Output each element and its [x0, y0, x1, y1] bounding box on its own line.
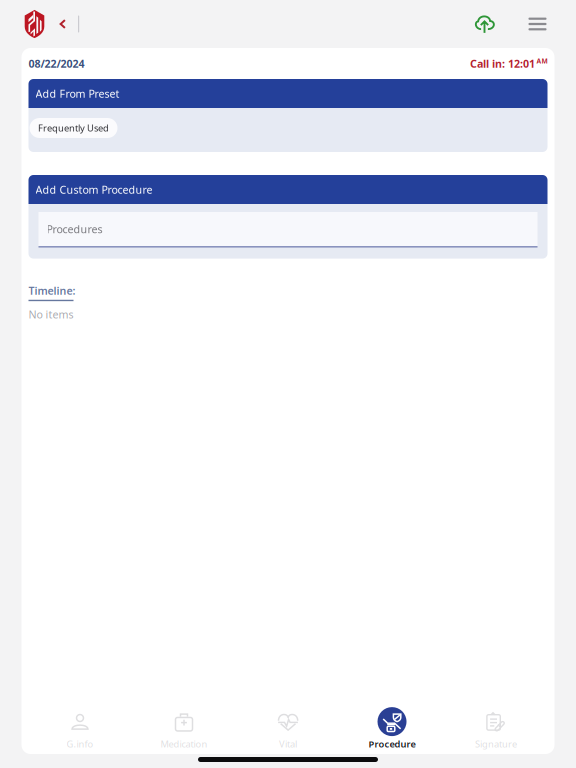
staticText: Frequently Used: [38, 122, 109, 134]
staticText: Procedures: [46, 222, 102, 236]
button[interactable]: Signature: [444, 707, 548, 750]
staticText: Timeline:: [28, 284, 75, 298]
staticText: Signature: [475, 738, 517, 750]
staticText: Add From Preset: [35, 86, 119, 101]
button[interactable]: Medication: [132, 707, 236, 750]
staticText: Procedure: [368, 738, 415, 750]
button[interactable]: Vital: [236, 707, 340, 750]
staticText: 08/22/2024: [28, 56, 84, 71]
staticText: AM: [536, 56, 547, 65]
staticText: G.info: [66, 738, 93, 750]
staticText: Vital: [279, 738, 297, 750]
staticText: Medication: [160, 738, 207, 750]
staticText: No items: [28, 307, 73, 321]
staticText: Call in: 12:01: [470, 56, 535, 71]
button[interactable]: Frequently Used: [29, 118, 117, 138]
button[interactable]: Menu: [503, 10, 554, 38]
button[interactable]: G.info: [28, 707, 132, 750]
button[interactable]: Procedure: [340, 707, 444, 750]
button[interactable]: Upload to cloud: [465, 8, 503, 39]
staticText: Add Custom Procedure: [35, 182, 152, 197]
button[interactable]: Back: [45, 11, 78, 37]
